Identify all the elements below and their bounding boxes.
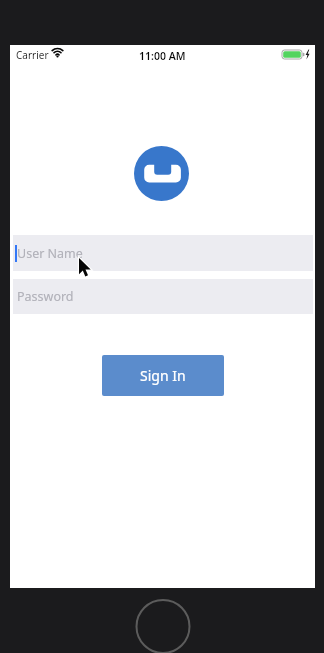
- staticText: User Name: [17, 245, 83, 262]
- staticText: 11:00 AM: [139, 49, 186, 63]
- button[interactable]: User Name: [13, 235, 313, 271]
- staticText: Sign In: [140, 366, 186, 385]
- staticText: Carrier: [16, 48, 49, 62]
- button[interactable]: Sign In: [102, 355, 224, 396]
- staticText: Password: [17, 288, 74, 305]
- button[interactable]: Password: [13, 279, 313, 314]
